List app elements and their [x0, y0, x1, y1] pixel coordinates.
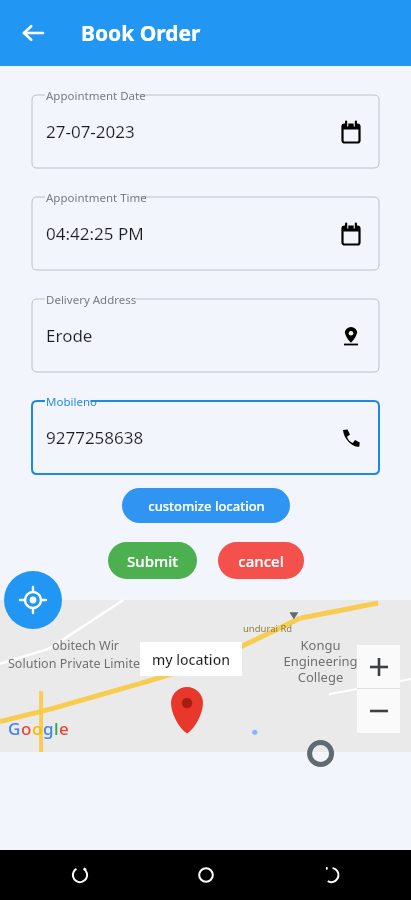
staticText: undurai Rd [243, 622, 293, 635]
button[interactable]: Call [331, 418, 371, 458]
staticText: obitech Wir [52, 637, 120, 654]
staticText: G [8, 717, 21, 740]
staticText: Appointment Time [46, 190, 147, 206]
button[interactable]: Back [12, 11, 56, 55]
staticText: Appointment Date [46, 88, 146, 104]
button[interactable]: Home [186, 855, 226, 895]
staticText: Delivery Address [46, 292, 137, 308]
staticText: Mobileno [46, 394, 97, 410]
staticText: cancel [238, 551, 284, 571]
staticText: o [21, 717, 32, 740]
button[interactable]: Zoom in [357, 645, 400, 688]
button[interactable]: Zoom out [357, 689, 400, 733]
button[interactable]: Appointment Time [32, 190, 379, 270]
staticText: Erode [46, 324, 93, 347]
button[interactable]: Submit [108, 542, 197, 579]
staticText: 04:42:25 PM [46, 222, 144, 245]
button[interactable]: cancel [218, 542, 304, 579]
button[interactable]: customize location [122, 488, 290, 523]
staticText: g [43, 717, 54, 740]
staticText: Solution Private Limited [8, 655, 148, 672]
button[interactable]: Pick date [331, 112, 371, 152]
staticText: my location [152, 650, 230, 669]
button[interactable]: My location [4, 571, 62, 629]
staticText: Kongu Engineering College [283, 636, 358, 685]
staticText: customize location [148, 497, 265, 515]
staticText: Book Order [81, 19, 201, 48]
staticText: Submit [127, 551, 178, 571]
staticText: 9277258638 [46, 426, 144, 449]
button[interactable]: Appointment Date [32, 88, 379, 168]
staticText: e [59, 717, 69, 740]
staticText: 27-07-2023 [46, 120, 135, 143]
button[interactable]: Pick location [331, 316, 371, 356]
staticText: o [32, 717, 43, 740]
button[interactable]: Pick date [331, 214, 371, 254]
staticText: l [54, 717, 59, 740]
button[interactable]: Recent [60, 855, 100, 895]
button[interactable]: Delivery Address [32, 292, 379, 372]
button[interactable]: Back [311, 855, 351, 895]
button[interactable]: my location [140, 642, 242, 676]
button[interactable]: Mobileno [32, 394, 379, 474]
